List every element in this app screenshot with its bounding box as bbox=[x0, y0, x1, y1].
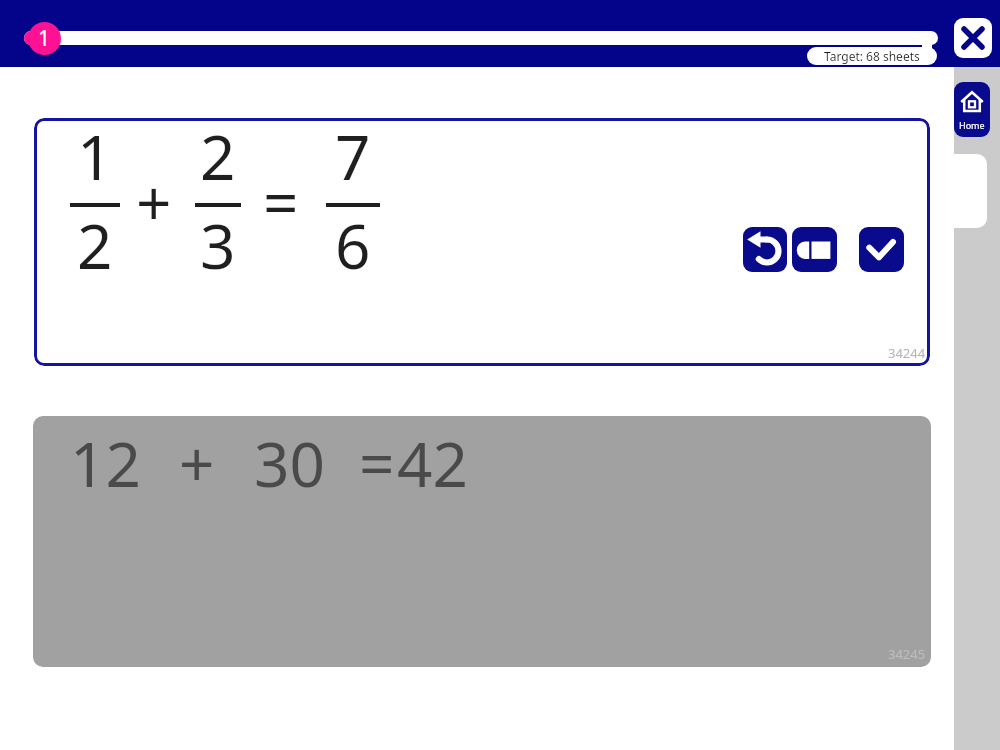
staticText: + bbox=[136, 160, 172, 244]
staticText: Target: 68 sheets bbox=[824, 48, 920, 64]
staticText: 1 bbox=[38, 24, 51, 53]
button[interactable] bbox=[792, 227, 837, 272]
button[interactable] bbox=[859, 227, 904, 272]
staticText: 2 bbox=[77, 203, 113, 287]
staticText: 34244 bbox=[888, 344, 926, 362]
staticText: 34245 bbox=[888, 645, 926, 663]
staticText: 6 bbox=[335, 203, 371, 287]
staticText: 1 bbox=[77, 114, 113, 198]
button[interactable] bbox=[743, 227, 787, 272]
staticText: = bbox=[263, 160, 299, 244]
staticText: 2 bbox=[200, 114, 236, 198]
staticText: + bbox=[179, 421, 215, 505]
staticText: 42 bbox=[397, 421, 468, 505]
staticText: 7 bbox=[335, 114, 371, 198]
staticText: 3 bbox=[200, 203, 236, 287]
staticText: 30 bbox=[254, 421, 325, 505]
staticText: = bbox=[359, 421, 395, 505]
button[interactable]: 1 bbox=[28, 22, 61, 55]
button[interactable] bbox=[954, 18, 992, 58]
staticText: 12 bbox=[70, 421, 141, 505]
staticText: Home bbox=[959, 119, 985, 131]
button[interactable]: Home bbox=[954, 82, 990, 137]
